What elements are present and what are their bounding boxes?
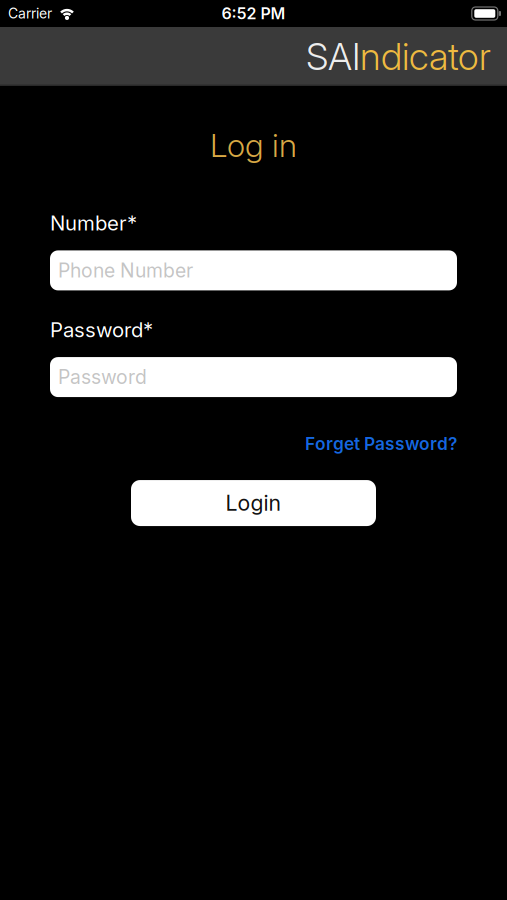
textField[interactable]: Phone Number xyxy=(50,250,457,290)
button[interactable]: Login xyxy=(131,480,376,526)
staticText: Log in xyxy=(210,126,297,165)
staticText: Carrier xyxy=(8,5,52,22)
staticText: Forget Password? xyxy=(305,433,457,454)
staticText: Phone Number xyxy=(58,259,193,282)
staticText: Number* xyxy=(50,211,137,235)
button[interactable]: Phone Number xyxy=(50,250,457,290)
button[interactable]: Password xyxy=(50,357,457,397)
textField[interactable]: Password xyxy=(50,357,457,397)
staticText: Password* xyxy=(50,317,153,342)
staticText: ndicator xyxy=(360,34,491,79)
staticText: Login xyxy=(225,490,281,516)
staticText: Password xyxy=(58,365,147,389)
staticText: SAI xyxy=(306,34,360,79)
staticText: 6:52 PM xyxy=(221,4,285,23)
button[interactable]: Forget Password? xyxy=(305,433,457,454)
